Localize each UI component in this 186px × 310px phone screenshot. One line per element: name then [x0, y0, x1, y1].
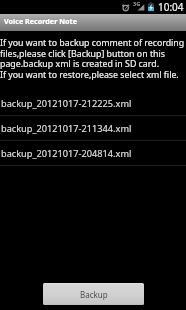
- staticText: Voice Recorder Note: [4, 16, 77, 26]
- staticText: If you want to restore,please select xml…: [0, 69, 179, 81]
- staticText: backup_20121017-212225.xml: [1, 97, 132, 110]
- staticText: backup_20121017-204814.xml: [1, 147, 132, 160]
- button[interactable]: Backup: [43, 283, 144, 305]
- staticText: 10:04: [158, 0, 184, 14]
- button[interactable]: backup_20121017-211344.xml: [0, 116, 186, 141]
- staticText: 3G: [133, 0, 141, 8]
- staticText: backup_20121017-211344.xml: [1, 122, 132, 135]
- button[interactable]: backup_20121017-204814.xml: [0, 141, 186, 166]
- staticText: If you want to backup comment of recordi…: [0, 37, 186, 70]
- button[interactable]: backup_20121017-212225.xml: [0, 91, 186, 116]
- staticText: Backup: [80, 289, 108, 300]
